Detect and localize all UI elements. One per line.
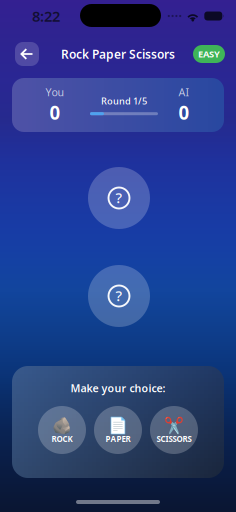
staticText: ? <box>115 286 122 305</box>
staticText: ? <box>115 188 122 207</box>
staticText: AI <box>178 85 189 99</box>
staticText: PAPER <box>105 434 130 444</box>
staticText: ROCK <box>51 434 72 444</box>
button[interactable]: EASY <box>193 45 225 63</box>
staticText: Make your choice: <box>70 381 165 395</box>
staticText: 📄 <box>108 416 128 435</box>
button[interactable]: 📄 <box>94 406 142 454</box>
staticText: You <box>45 85 64 99</box>
button[interactable]: ✂️ <box>150 406 198 454</box>
staticText: ✂️ <box>164 416 184 435</box>
staticText: EASY <box>198 48 220 60</box>
staticText: Round 1/5 <box>101 95 147 107</box>
staticText: 0 <box>49 100 60 125</box>
staticText: SCISSORS <box>156 434 191 444</box>
staticText: Rock Paper Scissors <box>61 46 175 62</box>
button[interactable]: Back <box>15 42 39 66</box>
button[interactable]: 🪨 <box>38 406 86 454</box>
staticText: 8:22 <box>32 6 60 26</box>
staticText: 0 <box>178 100 189 125</box>
staticText: 🪨 <box>52 416 72 435</box>
